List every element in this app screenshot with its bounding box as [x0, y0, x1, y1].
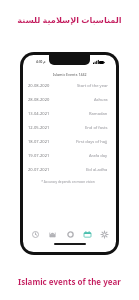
button[interactable]: 13-04-2021: [28, 107, 108, 121]
staticText: 4:30 م: [36, 60, 46, 64]
staticText: Islamic events of the year: [0, 276, 139, 287]
button[interactable]: 20-08-2020: [28, 79, 108, 93]
staticText: Start of the year: [77, 83, 108, 89]
staticText: المناسبات الإسلامية للسنة: [0, 14, 139, 25]
staticText: 12-05-2021: [28, 125, 50, 131]
staticText: 18-07-2021: [28, 139, 50, 145]
button[interactable]: Settings: [97, 227, 111, 241]
staticText: Arafa day: [89, 153, 108, 159]
staticText: 13-04-2021: [28, 111, 50, 117]
button[interactable]: Calendar: [80, 227, 94, 241]
button[interactable]: 28-08-2020: [28, 93, 108, 107]
staticText: * Accuracy depends on moon vision: [28, 180, 108, 184]
staticText: 28-08-2020: [28, 97, 50, 103]
button[interactable]: Prayer times: [28, 227, 42, 241]
staticText: First days of hajj: [76, 139, 108, 145]
button[interactable]: 18-07-2021: [28, 135, 108, 149]
button[interactable]: 12-05-2021: [28, 121, 108, 135]
button[interactable]: Compass: [63, 227, 77, 241]
staticText: Ramadan: [89, 111, 108, 117]
staticText: Eid al-adha: [86, 167, 108, 173]
button[interactable]: 20-07-2021: [28, 163, 108, 177]
staticText: 20-07-2021: [28, 167, 50, 173]
staticText: Islamic Events 1442: [53, 72, 87, 77]
button[interactable]: Qibla: [45, 227, 59, 241]
button[interactable]: 19-07-2021: [28, 149, 108, 163]
staticText: 19-07-2021: [28, 153, 50, 159]
staticText: End of fasts: [85, 125, 108, 131]
staticText: 20-08-2020: [28, 83, 50, 89]
staticText: Ashura: [94, 97, 108, 103]
